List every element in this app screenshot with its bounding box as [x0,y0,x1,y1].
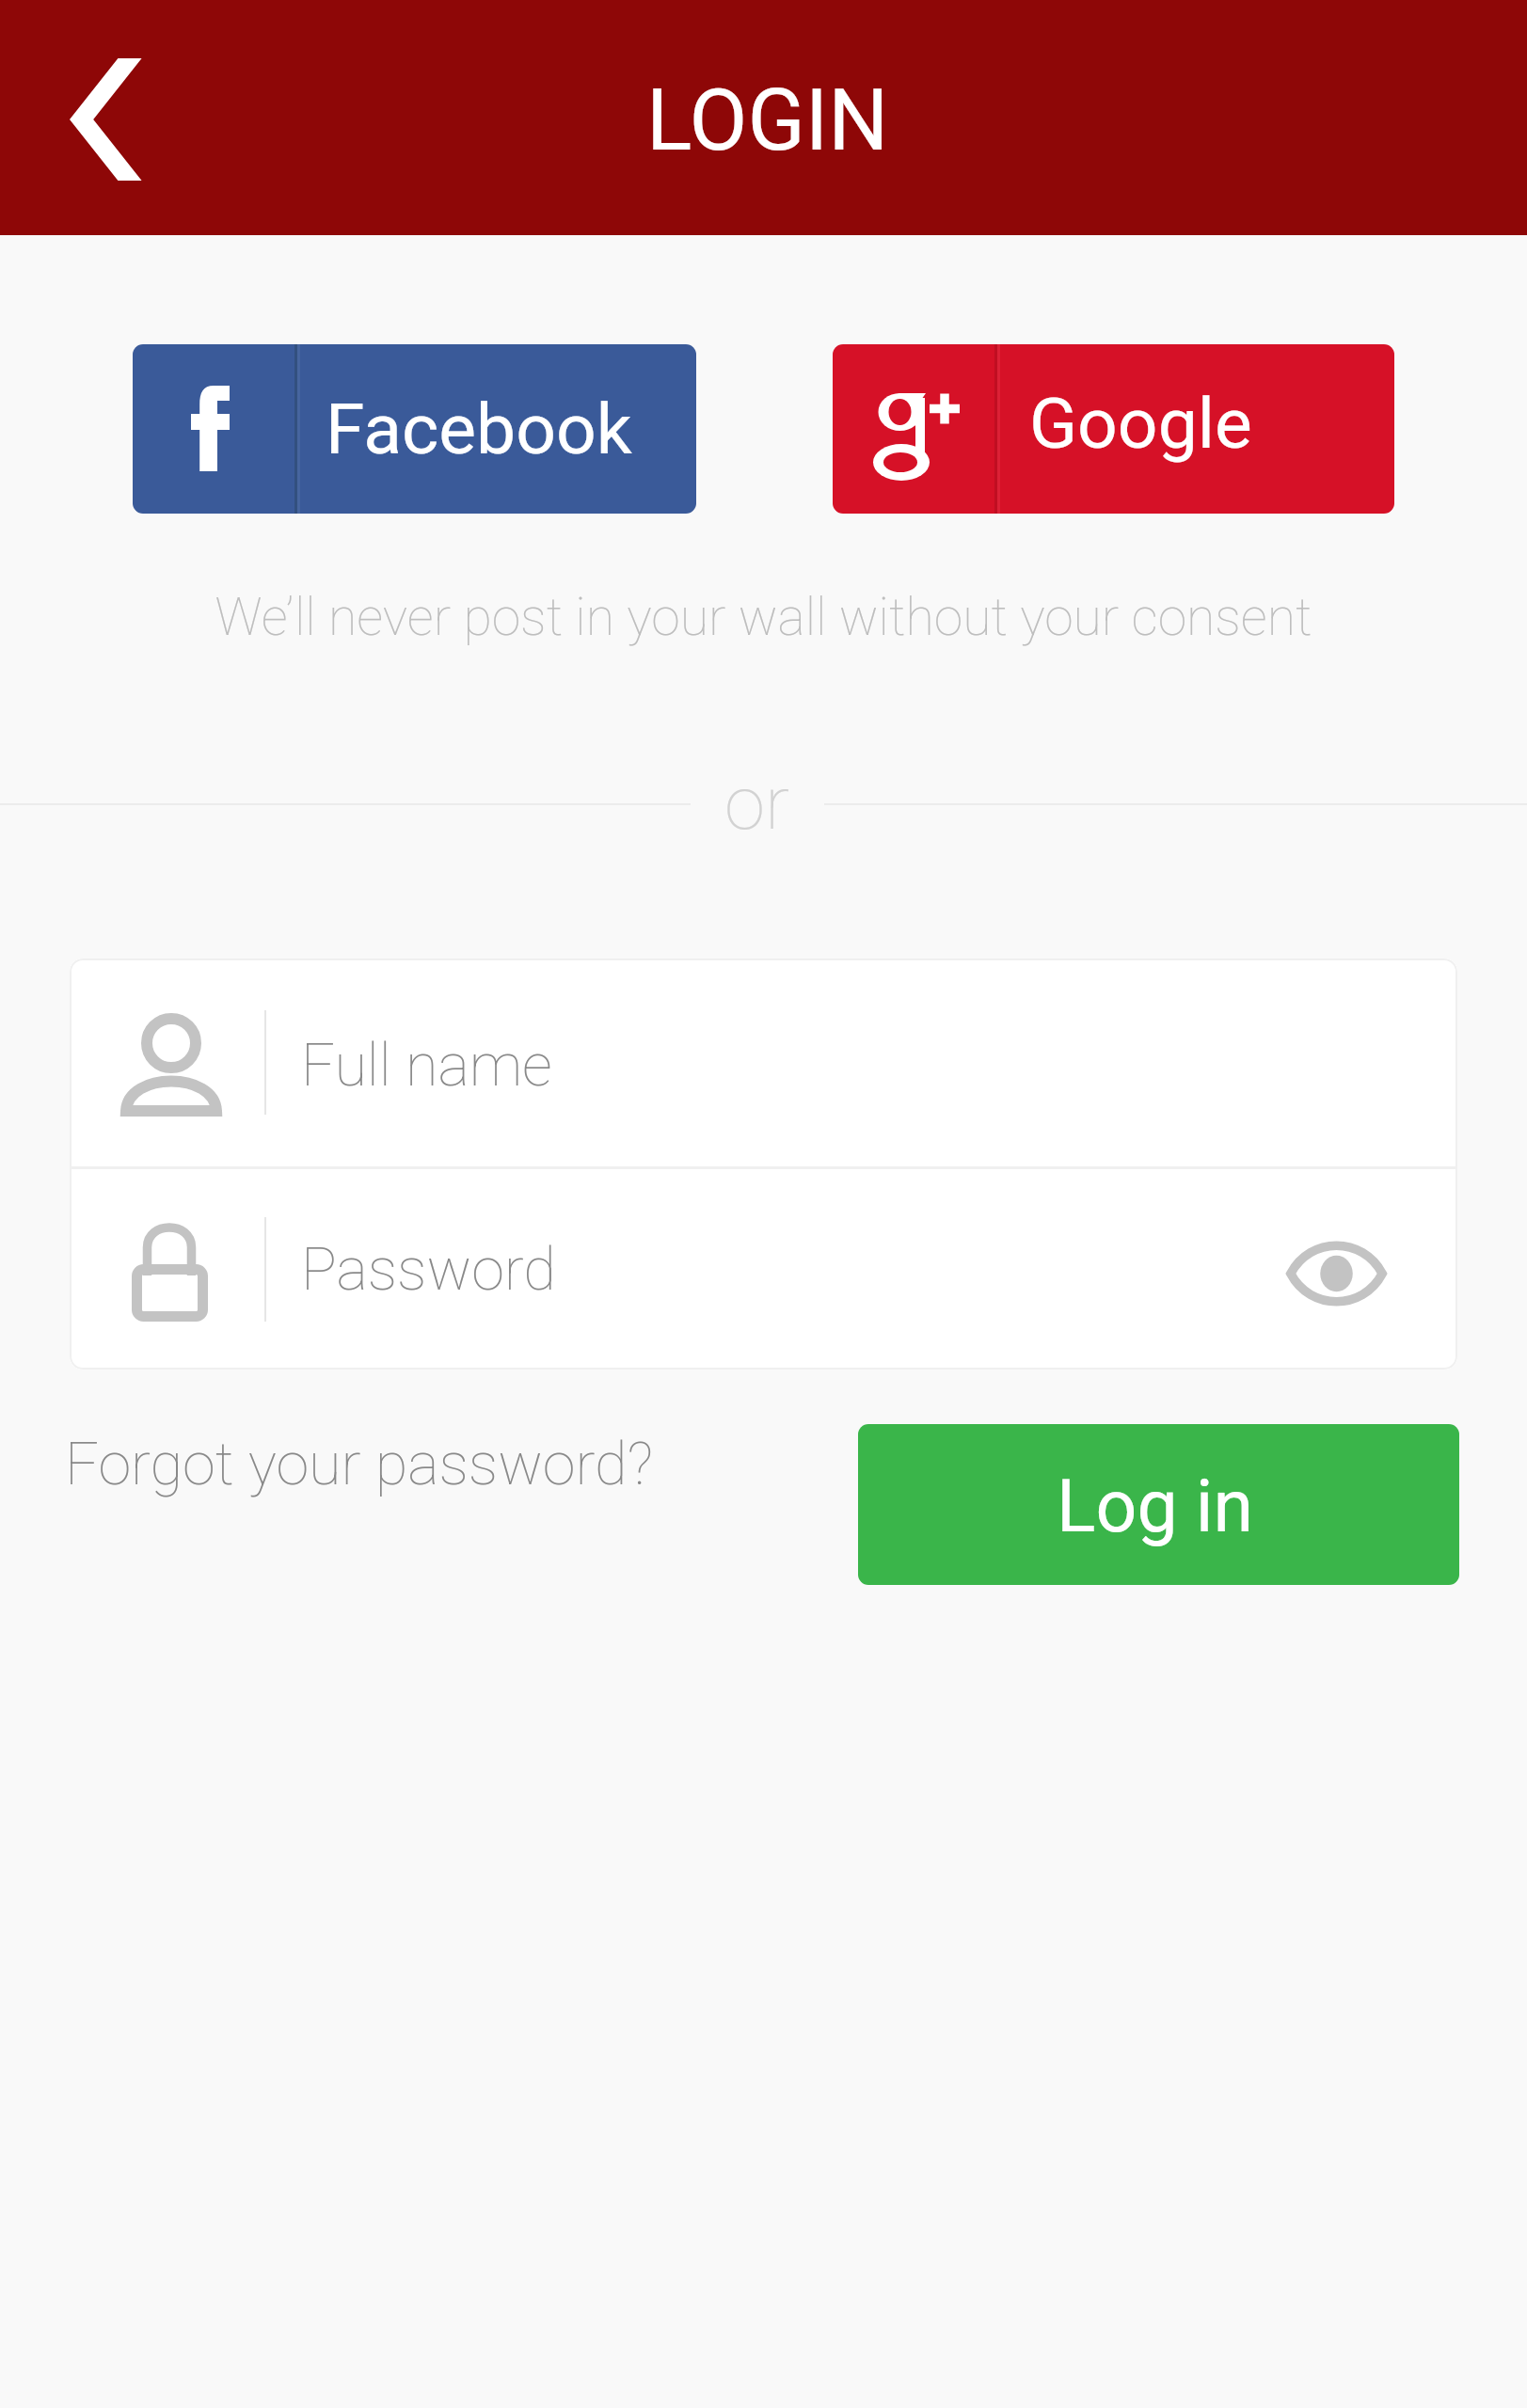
staticText: or [724,761,790,847]
staticText: Google [1029,382,1252,465]
button[interactable]: Log in [858,1424,1459,1585]
button[interactable]: Facebook [133,344,696,514]
staticText: Log in [1057,1465,1253,1549]
button[interactable]: Full name [70,958,1457,1166]
staticText: We’ll never post in your wall without yo… [0,587,1527,648]
button[interactable]: Forgot your password? [65,1430,653,1499]
button[interactable]: Back [48,38,161,198]
staticText: Full name [301,1031,552,1101]
button[interactable]: Password [70,1169,1457,1370]
staticText: Facebook [326,388,632,470]
staticText: LOGIN [646,71,889,170]
button[interactable]: Show password [1265,1218,1407,1322]
staticText: Password [301,1235,556,1305]
button[interactable]: Google [833,344,1394,514]
